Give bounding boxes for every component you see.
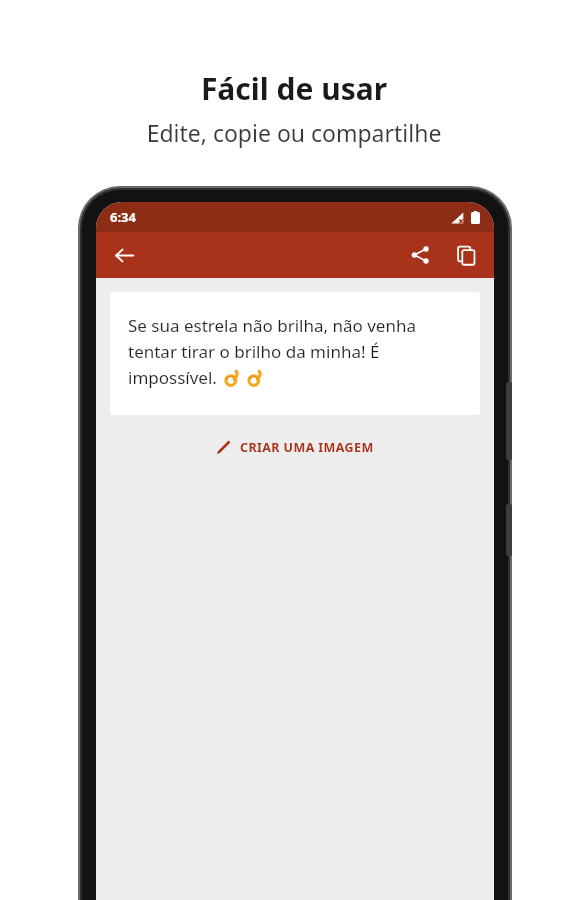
button[interactable]: Back bbox=[104, 235, 144, 275]
button[interactable]: Se sua estrela não brilha, não venha bbox=[110, 292, 480, 415]
staticText: Se sua estrela não brilha, não venha bbox=[128, 314, 416, 337]
staticText: impossível. bbox=[128, 366, 217, 389]
button[interactable]: Copy bbox=[446, 235, 486, 275]
staticText: CRIAR UMA IMAGEM bbox=[240, 439, 374, 456]
staticText: tentar tirar o brilho da minha! É bbox=[128, 340, 380, 363]
button[interactable]: Share bbox=[400, 235, 440, 275]
button[interactable]: CRIAR UMA IMAGEM bbox=[204, 433, 386, 462]
staticText: Fácil de usar bbox=[0, 68, 588, 109]
staticText: 6:34 bbox=[110, 208, 136, 226]
staticText: Edite, copie ou compartilhe bbox=[0, 117, 588, 148]
